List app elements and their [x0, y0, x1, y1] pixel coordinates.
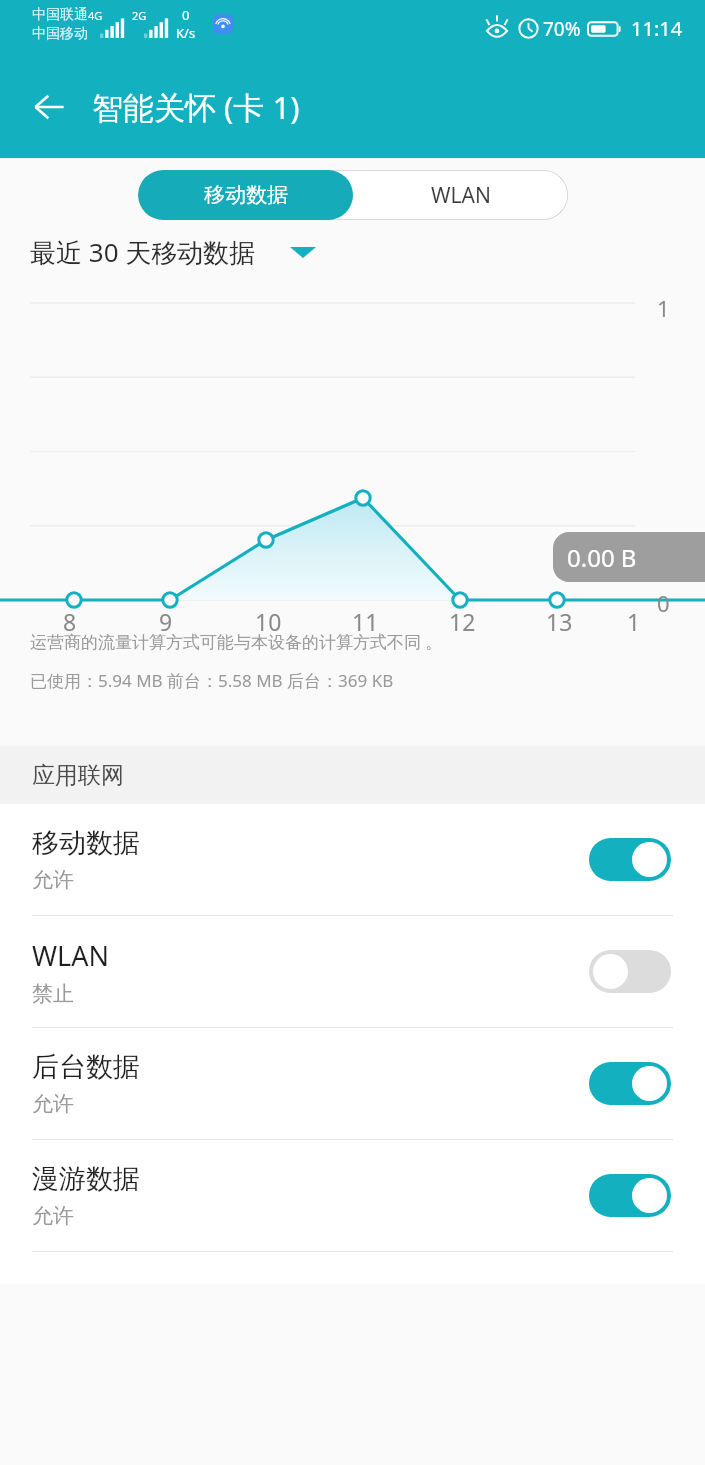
button[interactable]: 关闭	[589, 950, 671, 993]
staticText: 移动数据	[32, 826, 140, 860]
staticText: 9	[159, 606, 173, 637]
staticText: 1	[627, 606, 641, 637]
staticText: 0	[182, 6, 190, 24]
button[interactable]: 开启	[589, 838, 671, 881]
staticText: 中国联通	[32, 6, 88, 24]
staticText: 运营商的流量计算方式可能与本设备的计算方式不同 。	[30, 630, 443, 653]
staticText: 应用联网	[32, 761, 124, 790]
button[interactable]: WLAN	[0, 916, 705, 1027]
staticText: 允许	[32, 867, 74, 893]
button[interactable]: 移动数据	[138, 170, 353, 220]
staticText: 0.00 B	[567, 541, 637, 574]
button[interactable]: 最近 30 天移动数据	[30, 234, 316, 270]
staticText: 10	[255, 606, 282, 637]
staticText: 已使用：5.94 MB 前台：5.58 MB 后台：369 KB	[30, 669, 394, 692]
staticText: 11	[352, 606, 379, 637]
staticText: 最近 30 天移动数据	[30, 234, 256, 270]
button[interactable]: 后台数据	[0, 1028, 705, 1139]
staticText: 后台数据	[32, 1050, 140, 1084]
staticText: 8	[63, 606, 77, 637]
button[interactable]: 移动数据	[0, 804, 705, 915]
staticText: 移动数据	[204, 182, 288, 208]
button[interactable]: 开启	[589, 1062, 671, 1105]
button[interactable]: 返回	[18, 76, 80, 138]
staticText: 中国移动	[32, 25, 88, 43]
staticText: 70%	[543, 16, 581, 42]
staticText: 漫游数据	[32, 1162, 140, 1196]
staticText: WLAN	[32, 937, 110, 974]
staticText: 允许	[32, 1203, 74, 1229]
staticText: 禁止	[32, 981, 74, 1007]
staticText: 12	[449, 606, 476, 637]
staticText: 13	[546, 606, 573, 637]
button[interactable]: WLAN	[353, 170, 568, 220]
staticText: 智能关怀 (卡 1)	[92, 86, 300, 128]
staticText: 2G	[132, 8, 147, 23]
staticText: 11:14	[631, 15, 683, 42]
staticText: K/s	[176, 24, 196, 42]
staticText: 1	[657, 293, 670, 323]
staticText: 4G	[88, 8, 103, 23]
staticText: WLAN	[431, 181, 491, 210]
button[interactable]: 开启	[589, 1174, 671, 1217]
staticText: 允许	[32, 1091, 74, 1117]
staticText: 0	[657, 588, 670, 618]
button[interactable]: 漫游数据	[0, 1140, 705, 1251]
